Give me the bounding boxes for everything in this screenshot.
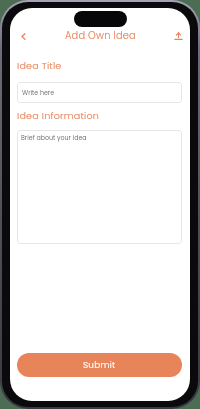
staticText: Add Own Idea bbox=[65, 29, 136, 43]
button[interactable]: Write here bbox=[17, 82, 182, 103]
button[interactable]: Brief about your idea bbox=[17, 130, 182, 244]
button[interactable]: Upload bbox=[169, 27, 187, 45]
staticText: Idea Title bbox=[17, 59, 62, 72]
button[interactable]: Back bbox=[14, 27, 32, 45]
staticText: Brief about your idea bbox=[21, 133, 87, 142]
staticText: Submit bbox=[83, 359, 116, 371]
button[interactable]: Submit bbox=[17, 353, 182, 377]
staticText: Idea Information bbox=[17, 109, 100, 122]
staticText: Write here bbox=[22, 88, 55, 97]
